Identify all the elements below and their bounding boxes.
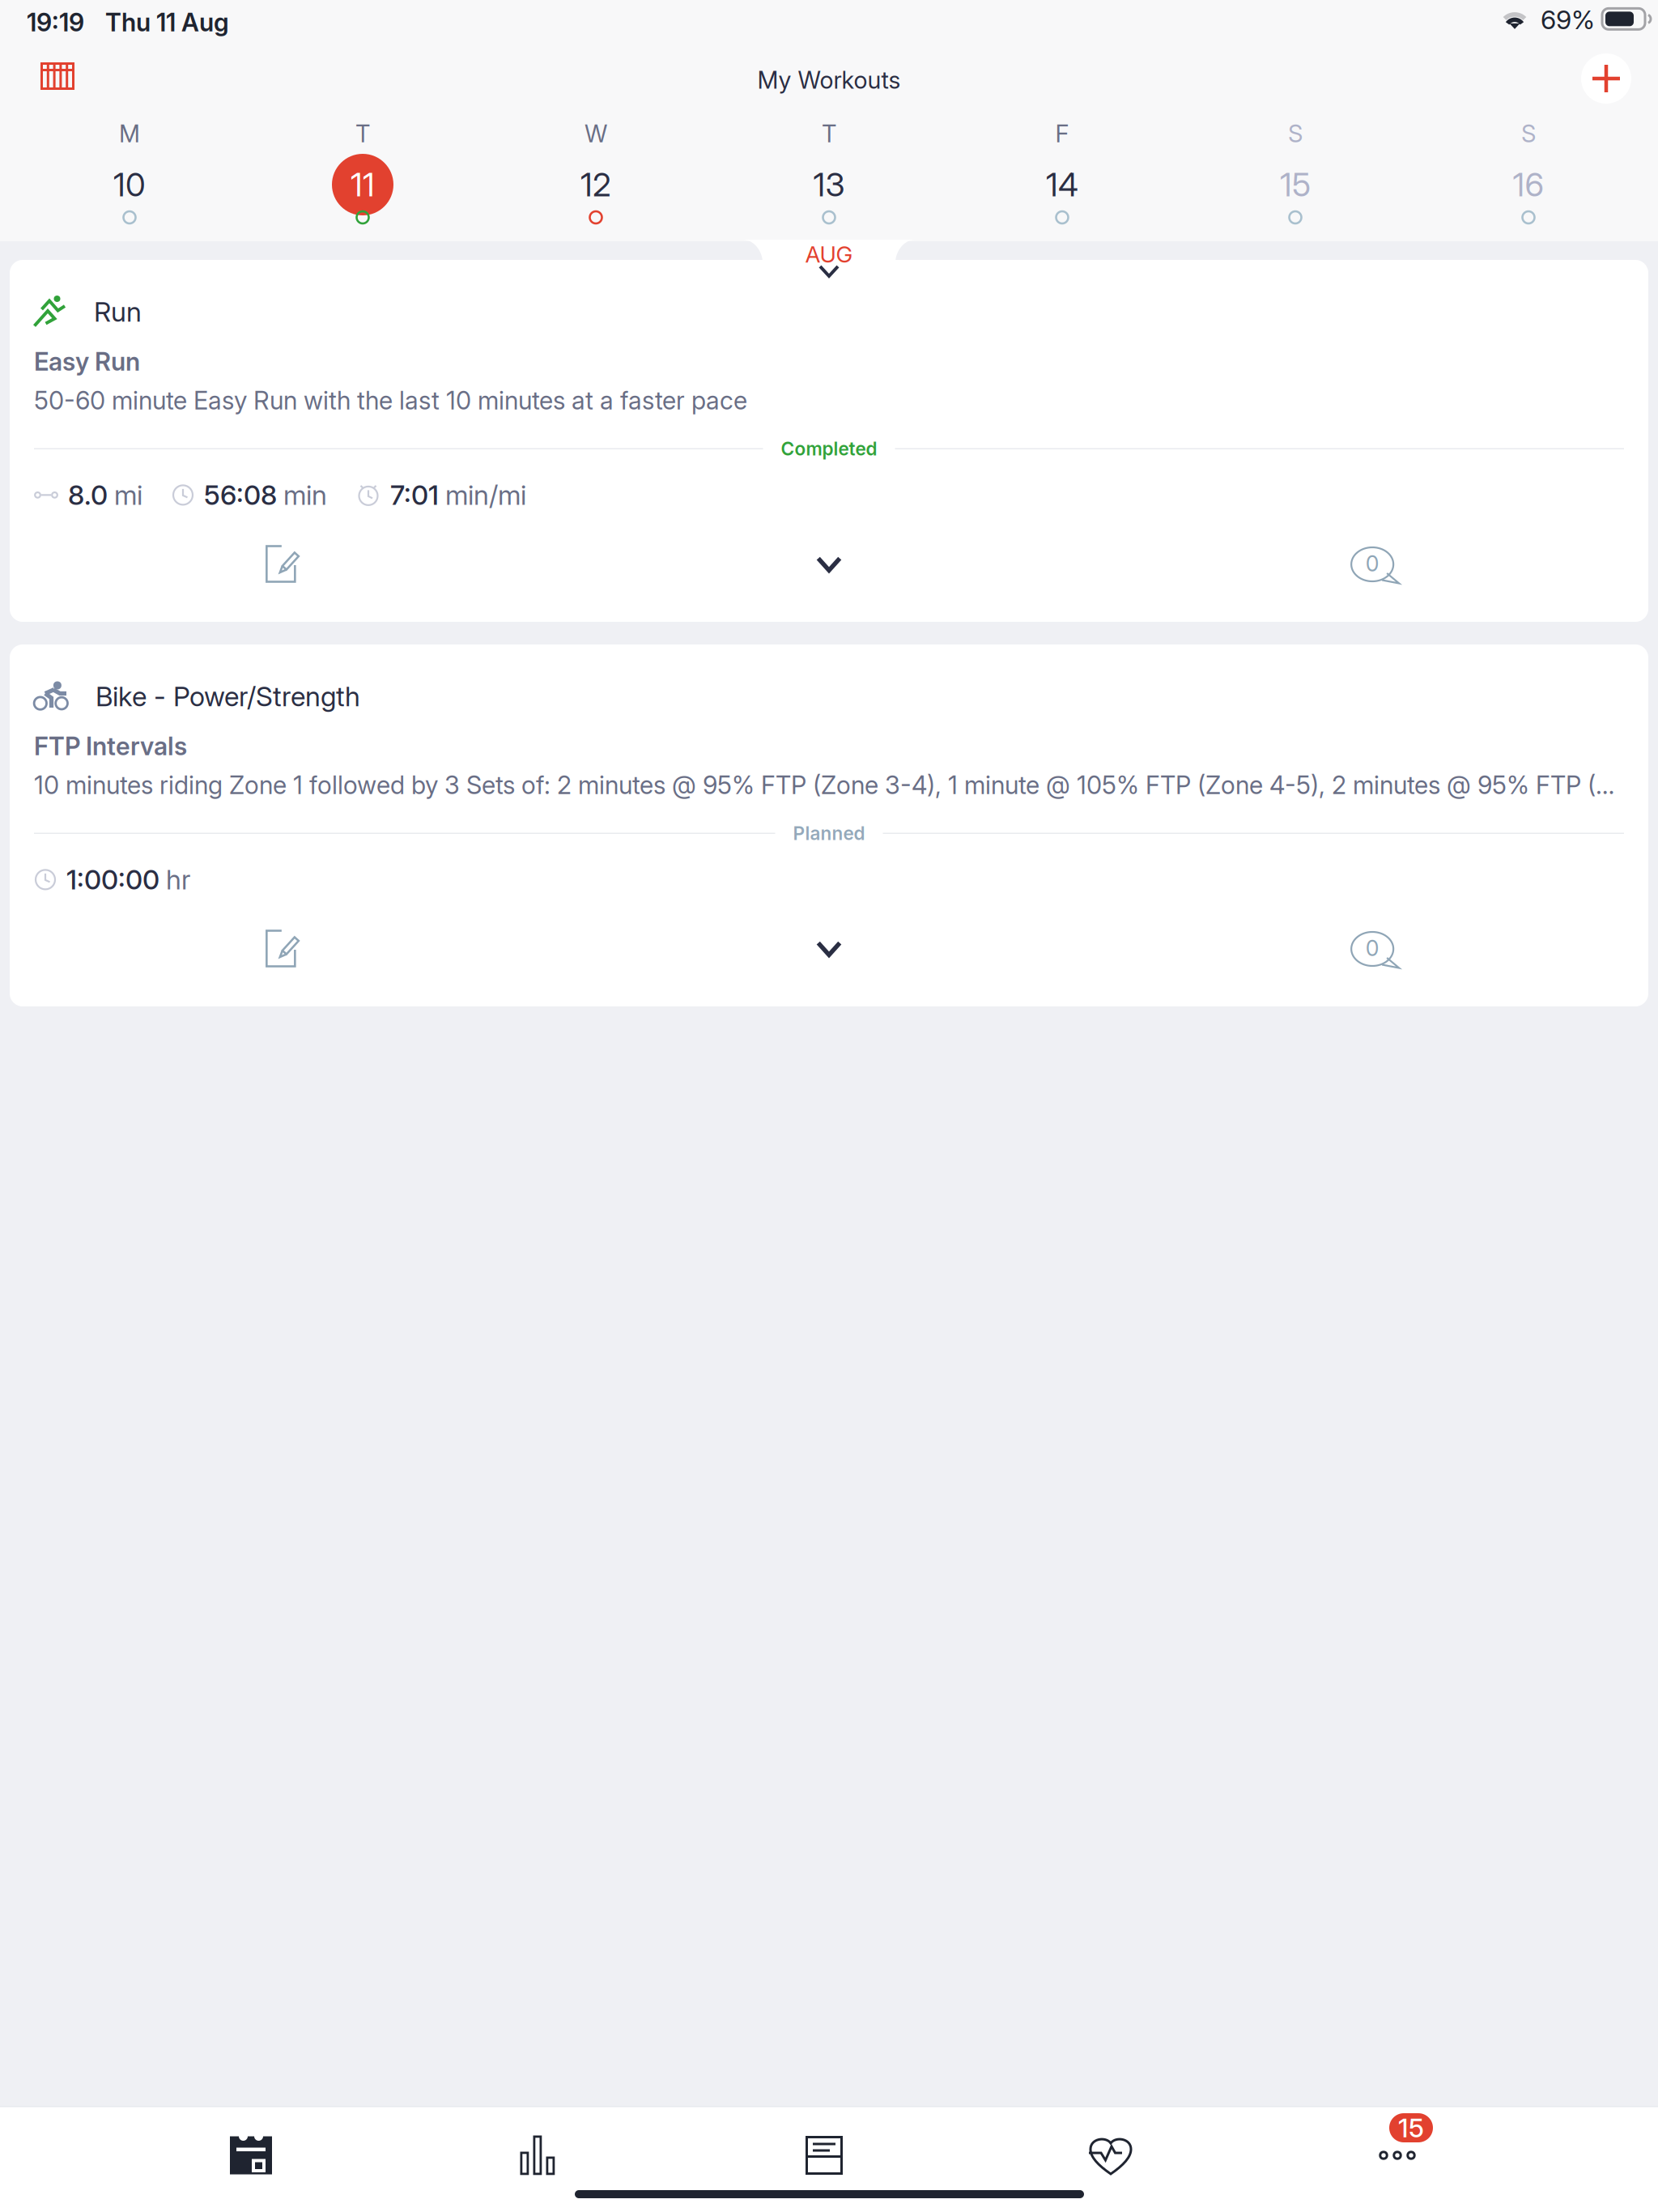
- staticText: mi: [114, 479, 142, 511]
- staticText: 1:00:00: [66, 863, 159, 896]
- staticText: Bike - Power/Strength: [96, 680, 360, 713]
- staticText: 56:08: [204, 479, 277, 511]
- staticText: 10 minutes riding Zone 1 followed by 3 S…: [34, 770, 1624, 800]
- staticText: 14: [1046, 165, 1078, 204]
- staticText: T: [355, 119, 370, 148]
- button[interactable]: August, change month: [743, 240, 915, 283]
- staticText: My Workouts: [757, 66, 901, 94]
- staticText: 0: [1366, 935, 1379, 961]
- staticText: 16: [1513, 165, 1544, 204]
- staticText: 10: [113, 165, 146, 204]
- staticText: 69%: [1541, 4, 1595, 35]
- staticText: Easy Run: [34, 347, 140, 377]
- button[interactable]: Add workout: [1571, 52, 1641, 105]
- button[interactable]: Add note: [10, 534, 556, 594]
- staticText: AUG: [805, 241, 853, 268]
- button[interactable]: Show details: [556, 534, 1102, 594]
- button[interactable]: Metrics: [394, 2121, 681, 2190]
- button[interactable]: T: [712, 120, 946, 238]
- staticText: 7:01: [390, 479, 439, 511]
- button[interactable]: Health: [967, 2121, 1254, 2190]
- staticText: 0: [1366, 550, 1379, 577]
- staticText: 15: [1398, 2112, 1424, 2143]
- button[interactable]: S: [1179, 120, 1412, 238]
- staticText: M: [119, 119, 140, 148]
- button[interactable]: Add note: [10, 919, 556, 979]
- staticText: min/mi: [445, 479, 526, 511]
- staticText: 50-60 minute Easy Run with the last 10 m…: [34, 385, 747, 416]
- button[interactable]: Comments: [1102, 534, 1648, 594]
- staticText: 8.0: [68, 479, 108, 511]
- staticText: 11: [351, 165, 375, 204]
- staticText: 19:19: [27, 7, 84, 37]
- staticText: T: [822, 119, 836, 148]
- staticText: F: [1055, 119, 1069, 148]
- staticText: hr: [166, 863, 190, 896]
- staticText: Thu 11 Aug: [105, 7, 229, 37]
- button[interactable]: M: [13, 120, 246, 238]
- staticText: 15: [1280, 165, 1311, 204]
- staticText: 13: [813, 165, 845, 204]
- button[interactable]: Calendar: [108, 2121, 394, 2190]
- button[interactable]: Workout library: [681, 2121, 967, 2190]
- button[interactable]: T: [246, 120, 479, 238]
- staticText: 12: [580, 165, 611, 204]
- button[interactable]: Comments: [1102, 919, 1648, 979]
- button[interactable]: W: [479, 120, 712, 238]
- staticText: Completed: [781, 438, 877, 460]
- button[interactable]: Calendar view: [23, 49, 92, 103]
- staticText: S: [1288, 119, 1303, 148]
- staticText: W: [585, 119, 607, 148]
- staticText: Run: [94, 295, 142, 328]
- button[interactable]: More, 15 notifications: [1254, 2121, 1541, 2190]
- staticText: S: [1521, 119, 1536, 148]
- button[interactable]: S: [1412, 120, 1645, 238]
- staticText: FTP Intervals: [34, 731, 187, 761]
- staticText: min: [283, 479, 327, 511]
- staticText: Planned: [793, 822, 865, 844]
- button[interactable]: F: [946, 120, 1179, 238]
- button[interactable]: Show details: [556, 919, 1102, 979]
